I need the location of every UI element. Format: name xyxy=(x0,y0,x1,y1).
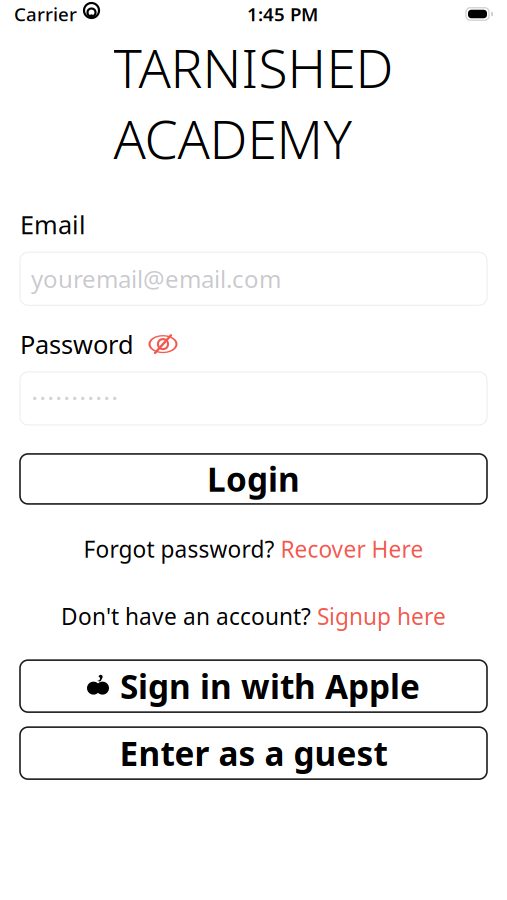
staticText: Forgot password? xyxy=(83,534,280,564)
button[interactable]: Enter as a guest xyxy=(20,727,487,779)
button[interactable]: Don't have an account? xyxy=(51,595,456,637)
button[interactable]: Sign in with Apple xyxy=(20,660,487,712)
staticText: 1:45 PM xyxy=(247,2,318,26)
button[interactable]: Forgot password? xyxy=(73,528,433,570)
staticText: Recover Here xyxy=(280,534,423,564)
staticText: TARNISHED ACADEMY xyxy=(113,32,393,174)
staticText: Enter as a guest xyxy=(119,731,387,775)
button[interactable]: Show password xyxy=(148,333,178,355)
staticText: youremail@email.com xyxy=(31,263,281,295)
staticText: Email xyxy=(20,208,86,241)
staticText: Signup here xyxy=(317,601,446,631)
staticText: Sign in with Apple xyxy=(120,664,420,708)
button[interactable]: Login xyxy=(20,454,487,504)
staticText: Don't have an account? xyxy=(61,601,317,631)
staticText: Carrier xyxy=(14,2,77,26)
staticText: Login xyxy=(207,457,300,501)
staticText: Password xyxy=(20,327,134,361)
